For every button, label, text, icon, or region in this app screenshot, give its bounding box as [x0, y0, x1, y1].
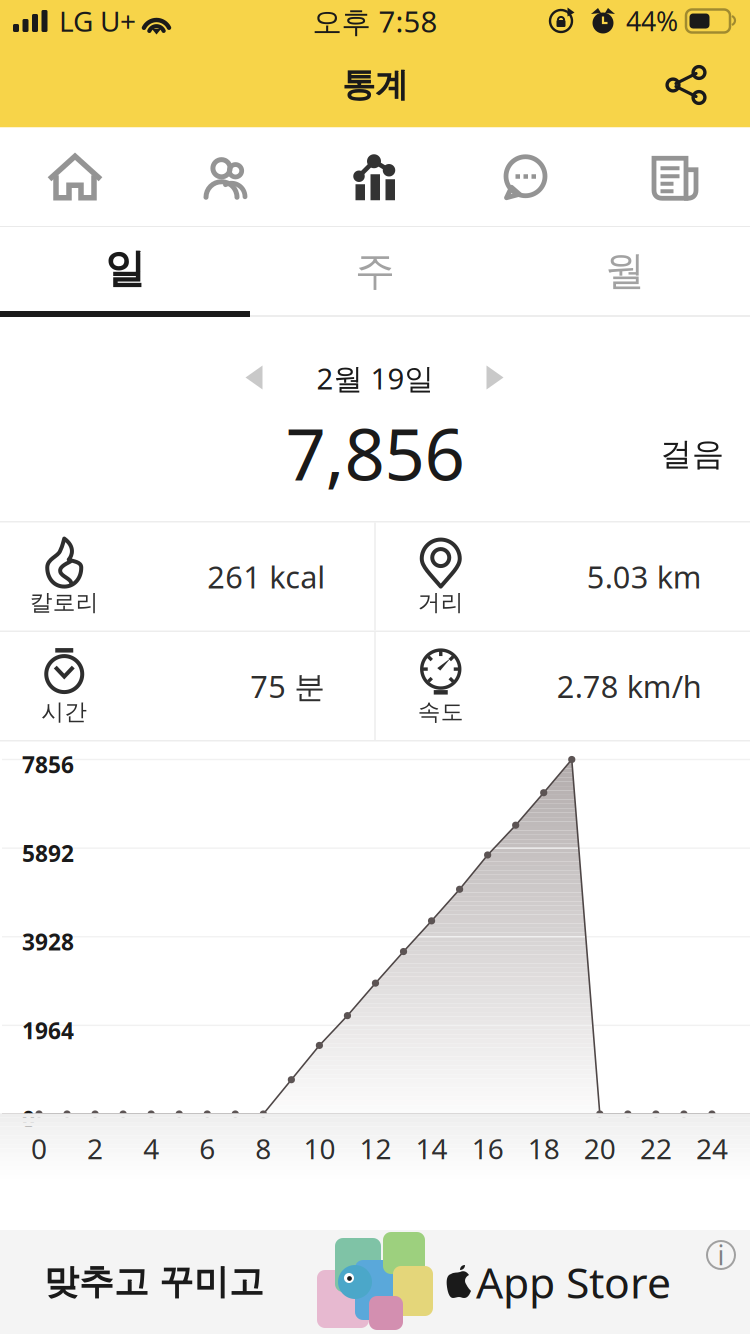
staticText: LG U+ — [59, 2, 136, 40]
button[interactable]: 소식 — [600, 127, 750, 226]
staticText: 8 — [255, 1130, 271, 1167]
staticText: 통계 — [342, 64, 408, 105]
button[interactable]: 속도 — [376, 632, 750, 740]
button[interactable]: 친구 — [150, 127, 300, 226]
staticText: 6 — [199, 1130, 215, 1167]
button[interactable]: 대화 — [450, 127, 600, 226]
staticText: 오후 7:58 — [312, 1, 437, 40]
staticText: 24 — [696, 1130, 728, 1167]
staticText: 7,856 — [285, 406, 464, 500]
staticText: 2월 19일 — [316, 358, 433, 397]
button[interactable]: 월 — [500, 227, 750, 317]
button[interactable]: 시간 — [0, 632, 374, 740]
button[interactable]: 주 — [250, 227, 500, 317]
staticText: 12 — [359, 1130, 391, 1167]
staticText: App Store — [476, 1254, 671, 1310]
staticText: 맞추고 꾸미고 — [44, 1261, 264, 1303]
button[interactable]: 칼로리 — [0, 522, 374, 630]
staticText: 월 — [605, 246, 645, 295]
staticText: 주 — [355, 246, 395, 295]
staticText: 시간 — [41, 698, 87, 726]
staticText: 걸음 — [660, 434, 724, 474]
button[interactable]: 홈 — [0, 127, 150, 226]
staticText: 5.03 km — [587, 556, 702, 597]
staticText: 일 — [105, 244, 145, 293]
staticText: 칼로리 — [30, 589, 99, 616]
staticText: 261 kcal — [207, 556, 325, 597]
staticText: 4 — [143, 1130, 159, 1167]
staticText: 18 — [528, 1130, 560, 1167]
staticText: 3928 — [22, 927, 74, 957]
staticText: 22 — [640, 1130, 672, 1167]
staticText: 1964 — [22, 1015, 74, 1045]
staticText: 16 — [472, 1130, 504, 1167]
staticText: 10 — [303, 1130, 335, 1167]
button[interactable]: 통계 — [300, 127, 450, 226]
staticText: 20 — [584, 1130, 616, 1167]
staticText: i — [717, 1237, 724, 1273]
button[interactable]: 공유 — [641, 42, 750, 127]
staticText: 75 분 — [250, 666, 325, 706]
staticText: 2 — [87, 1130, 103, 1167]
button[interactable]: 광고 — [0, 1230, 750, 1334]
staticText: 0 — [22, 1104, 35, 1134]
staticText: 5892 — [22, 838, 74, 868]
staticText: 44% — [626, 3, 678, 39]
staticText: 속도 — [418, 698, 464, 726]
button[interactable]: 이전 날짜 — [217, 350, 291, 405]
staticText: 14 — [416, 1130, 448, 1167]
staticText: 0 — [31, 1130, 47, 1167]
staticText: 거리 — [418, 589, 464, 616]
button[interactable]: 다음 날짜 — [458, 350, 532, 405]
staticText: 2.78 km/h — [557, 666, 702, 706]
button[interactable]: 일 — [0, 227, 250, 317]
button[interactable]: 거리 — [376, 522, 750, 630]
staticText: 7856 — [22, 749, 74, 780]
